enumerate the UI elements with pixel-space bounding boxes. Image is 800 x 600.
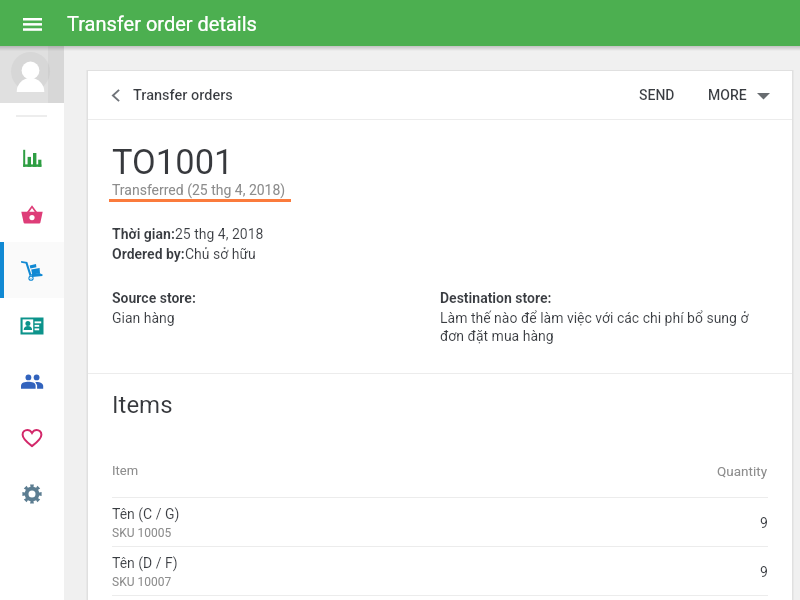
button[interactable]: Tên (C / G) (112, 498, 768, 546)
staticText: Items (112, 391, 173, 419)
staticText: Thời gian: (112, 226, 175, 242)
staticText: TO1001 (112, 142, 234, 182)
staticText: Làm thế nào để làm việc với các chi phí … (440, 310, 760, 345)
staticText: Chủ sở hữu (185, 246, 256, 262)
staticText: 9 (760, 515, 768, 531)
staticText: Item (112, 463, 139, 478)
staticText: Destination store: (440, 290, 552, 306)
staticText: Tên (C / G) (112, 506, 180, 522)
staticText: MORE (708, 87, 747, 103)
button[interactable]: Contacts (0, 298, 64, 354)
staticText: Transfer orders (133, 87, 233, 104)
staticText: Tên (D / F) (112, 555, 178, 571)
staticText: SEND (639, 87, 675, 103)
staticText: SKU 10005 (112, 526, 172, 540)
staticText: Source store: (112, 290, 196, 306)
button[interactable]: SEND (627, 77, 687, 113)
staticText: Transfer order details (67, 12, 257, 35)
button[interactable]: Transfer orders (88, 77, 241, 114)
staticText: 9 (760, 564, 768, 580)
button[interactable]: Reports (0, 130, 64, 186)
button[interactable]: Sales (0, 186, 64, 242)
staticText: SKU 10007 (112, 575, 172, 589)
button[interactable]: Customers (0, 354, 64, 410)
staticText: Ordered by: (112, 246, 185, 262)
button[interactable]: Settings (0, 466, 64, 522)
staticText: Quantity (717, 463, 768, 479)
button[interactable]: MORE (696, 77, 782, 113)
staticText: 25 thg 4, 2018 (175, 226, 264, 242)
button[interactable]: Favourites (0, 410, 64, 466)
staticText: Transferred (25 thg 4, 2018) (112, 182, 286, 198)
button[interactable]: Open navigation menu (0, 0, 64, 46)
staticText: Gian hàng (112, 310, 175, 326)
button[interactable]: Transfer orders (0, 242, 64, 298)
button[interactable]: Tên (D / F) (112, 547, 768, 595)
